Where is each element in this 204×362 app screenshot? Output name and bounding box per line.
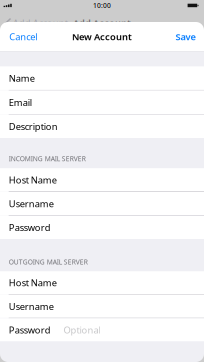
staticText: INCOMING MAIL SERVER: [9, 154, 86, 163]
staticText: Optional: [63, 324, 100, 336]
button[interactable]: Username: [0, 192, 204, 215]
button[interactable]: Save: [168, 21, 204, 52]
staticText: Add Account: [73, 17, 131, 29]
staticText: New Account: [72, 30, 132, 43]
button[interactable]: Host Name: [0, 168, 204, 191]
staticText: Username: [9, 300, 54, 312]
staticText: Name: [9, 72, 35, 84]
staticText: Description: [9, 120, 58, 133]
staticText: Add Account: [13, 17, 68, 29]
button[interactable]: Password: [0, 318, 204, 341]
button[interactable]: Host Name: [0, 271, 204, 294]
button[interactable]: Name: [0, 66, 204, 90]
staticText: Save: [175, 30, 195, 43]
button[interactable]: Description: [0, 115, 204, 138]
staticText: Host Name: [9, 276, 57, 289]
staticText: OUTGOING MAIL SERVER: [9, 257, 88, 266]
button[interactable]: Cancel: [0, 21, 44, 52]
staticText: Host Name: [9, 174, 57, 186]
staticText: Password: [9, 324, 51, 336]
button[interactable]: Username: [0, 295, 204, 318]
button[interactable]: Password: [0, 216, 204, 239]
staticText: 10:00: [93, 1, 111, 10]
staticText: Cancel: [9, 30, 37, 43]
staticText: Username: [9, 197, 54, 210]
staticText: Email: [9, 96, 32, 108]
staticText: Password: [9, 221, 51, 234]
button[interactable]: Email: [0, 90, 204, 114]
